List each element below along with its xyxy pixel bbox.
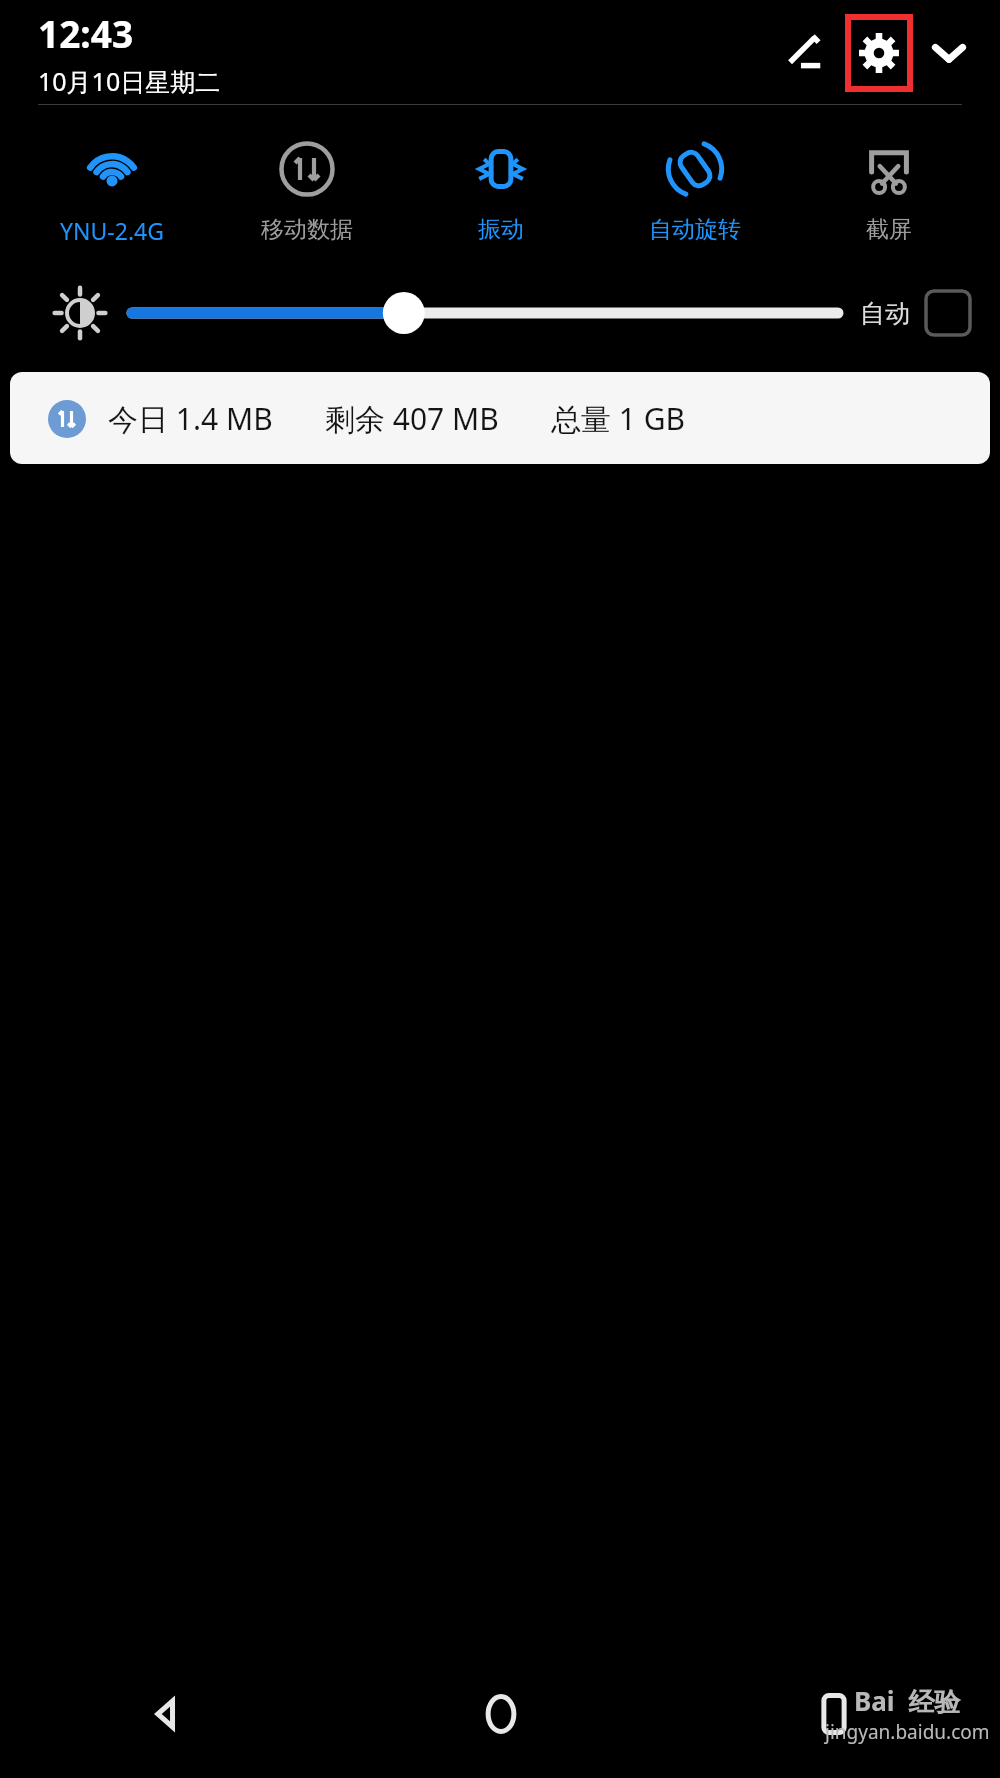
button[interactable]: Auto brightness bbox=[926, 291, 970, 335]
staticText: Bai 经验 bbox=[854, 1683, 961, 1719]
staticText: 振动 bbox=[478, 215, 524, 244]
staticText: 截屏 bbox=[866, 215, 912, 244]
button[interactable]: 自动旋转 bbox=[598, 133, 792, 248]
button[interactable]: 振动 bbox=[404, 133, 598, 248]
staticText: 自动 bbox=[860, 298, 910, 329]
staticText: jingyan.baidu.com bbox=[825, 1719, 990, 1745]
staticText: 12:43 bbox=[38, 8, 134, 58]
button[interactable]: Recents bbox=[667, 1650, 1000, 1778]
staticText: 10月10日星期二 bbox=[38, 64, 221, 98]
button[interactable] bbox=[132, 291, 838, 335]
button[interactable]: YNU-2.4G bbox=[14, 133, 209, 250]
button[interactable]: Settings bbox=[848, 17, 910, 89]
button[interactable]: Back bbox=[0, 1650, 334, 1778]
staticText: 总量 1 GB bbox=[551, 398, 686, 439]
button[interactable]: Expand bbox=[920, 18, 978, 88]
staticText: 剩余 407 MB bbox=[325, 398, 499, 439]
button[interactable]: Home bbox=[334, 1650, 667, 1778]
button[interactable]: 移动数据 bbox=[209, 133, 404, 248]
staticText: 移动数据 bbox=[261, 215, 353, 244]
staticText: YNU-2.4G bbox=[60, 215, 164, 246]
button[interactable]: 截屏 bbox=[792, 133, 986, 248]
staticText: 自动旋转 bbox=[649, 215, 741, 244]
button[interactable]: 今日 1.4 MB bbox=[10, 372, 990, 464]
staticText: 今日 1.4 MB bbox=[108, 398, 273, 439]
button[interactable]: Edit bbox=[776, 18, 836, 88]
